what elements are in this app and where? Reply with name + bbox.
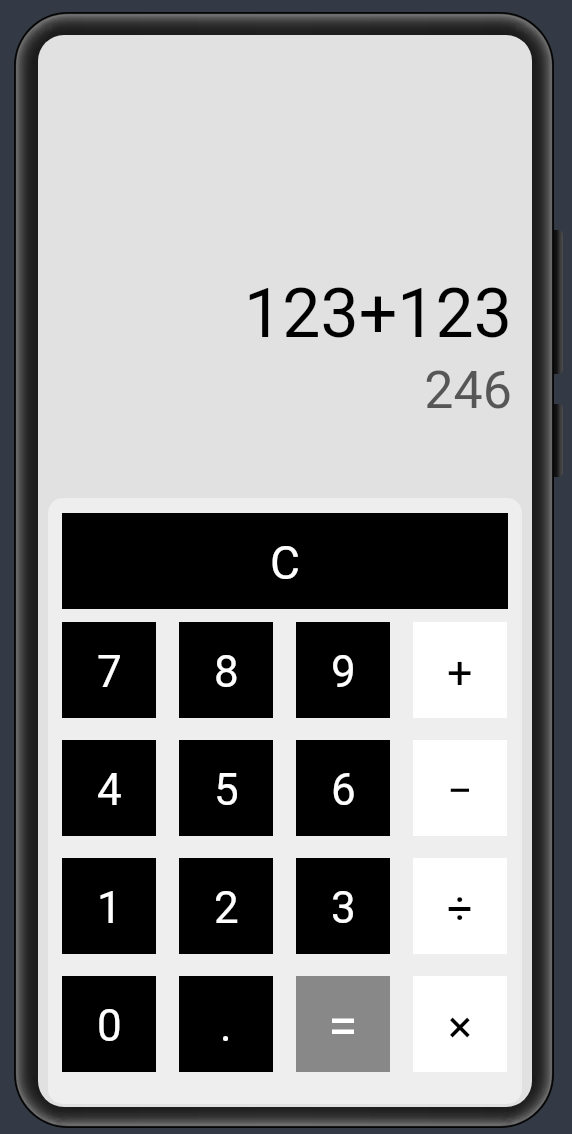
button[interactable]: C xyxy=(62,513,508,609)
button[interactable]: 7 xyxy=(62,622,156,718)
button[interactable]: 1 xyxy=(62,858,156,954)
button[interactable]: 3 xyxy=(296,858,390,954)
button[interactable]: ÷ xyxy=(413,858,507,954)
staticText: C xyxy=(270,536,300,590)
staticText: 5 xyxy=(214,764,239,816)
button[interactable]: 4 xyxy=(62,740,156,836)
staticText: ÷ xyxy=(447,882,473,935)
button[interactable]: 8 xyxy=(179,622,273,718)
button[interactable]: 2 xyxy=(179,858,273,954)
staticText: 3 xyxy=(331,882,356,934)
button[interactable]: + xyxy=(413,622,507,718)
button[interactable]: = xyxy=(296,976,390,1072)
button[interactable]: 6 xyxy=(296,740,390,836)
staticText: 0 xyxy=(97,1000,122,1052)
button[interactable]: 5 xyxy=(179,740,273,836)
staticText: × xyxy=(448,1000,473,1053)
staticText: 123+123 xyxy=(244,274,512,354)
staticText: 6 xyxy=(331,764,356,816)
button[interactable]: × xyxy=(413,976,507,1072)
staticText: 7 xyxy=(97,646,122,698)
button[interactable]: 9 xyxy=(296,622,390,718)
staticText: 2 xyxy=(214,882,239,934)
staticText: 8 xyxy=(214,646,239,698)
staticText: + xyxy=(447,646,473,699)
staticText: = xyxy=(328,995,358,1058)
staticText: 1 xyxy=(97,882,122,934)
staticText: 246 xyxy=(424,360,512,421)
staticText: − xyxy=(447,764,473,817)
button[interactable]: − xyxy=(413,740,507,836)
button[interactable]: 0 xyxy=(62,976,156,1072)
staticText: 9 xyxy=(331,646,356,698)
staticText: . xyxy=(220,1000,232,1052)
button[interactable]: . xyxy=(179,976,273,1072)
staticText: 4 xyxy=(97,764,122,816)
